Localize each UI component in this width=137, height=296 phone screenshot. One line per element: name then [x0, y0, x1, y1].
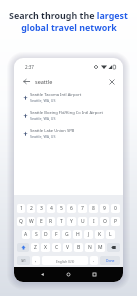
button[interactable]: H	[73, 230, 82, 239]
button[interactable]: W	[27, 217, 35, 226]
button[interactable]: K	[95, 230, 104, 239]
button[interactable]: !#1	[17, 256, 30, 265]
staticText: ,	[35, 257, 37, 264]
staticText: D	[44, 231, 48, 238]
button[interactable]: Back	[22, 77, 31, 86]
staticText: Z	[34, 244, 37, 251]
button[interactable]: C	[52, 243, 61, 252]
button[interactable]	[17, 243, 29, 252]
staticText: Q	[19, 218, 23, 225]
staticText: P	[114, 218, 118, 225]
staticText: Seattle Boeing Fld/King Co Intl Airport	[30, 110, 103, 116]
staticText: Seattle, WA, US	[30, 134, 56, 139]
staticText: I	[93, 218, 95, 225]
button[interactable]: I	[89, 217, 98, 226]
staticText: V	[66, 244, 70, 251]
staticText: J	[88, 231, 90, 238]
staticText: N	[88, 244, 92, 251]
button[interactable]: D	[42, 230, 50, 239]
button[interactable]: 8	[89, 204, 98, 213]
staticText: 4	[50, 205, 53, 212]
staticText: L	[109, 231, 112, 238]
staticText: C	[55, 244, 59, 251]
staticText: 5	[60, 205, 63, 212]
button[interactable]: Clear search	[107, 77, 116, 86]
button[interactable]: Y	[67, 217, 76, 226]
button[interactable]: S	[32, 230, 40, 239]
button[interactable]: 2	[27, 204, 35, 213]
button[interactable]: Recent apps	[90, 270, 99, 279]
button[interactable]: X	[41, 243, 50, 252]
button[interactable]: .	[90, 256, 98, 265]
staticText: A	[24, 231, 28, 238]
staticText: W	[29, 218, 34, 225]
button[interactable]: A	[22, 230, 30, 239]
staticText: H	[76, 231, 80, 238]
staticText: 8	[92, 205, 95, 212]
button[interactable]: Seattle Boeing Fld/King Co Intl Airport	[14, 106, 123, 124]
button[interactable]: 9	[100, 204, 109, 213]
button[interactable]: 7	[78, 204, 87, 213]
button[interactable]: T	[57, 217, 65, 226]
staticText: Seattle, WA, US	[30, 98, 56, 103]
button[interactable]: R	[47, 217, 55, 226]
staticText: M	[98, 244, 103, 251]
button[interactable]: Home	[64, 270, 73, 279]
button[interactable]: Seattle Lake Union SPB	[14, 124, 123, 142]
button[interactable]: English (US)	[42, 256, 88, 265]
staticText: global travel network	[21, 21, 117, 33]
staticText: 2:37	[25, 64, 34, 70]
staticText: Done	[106, 258, 115, 263]
staticText: R	[49, 218, 53, 225]
button[interactable]: Back	[38, 270, 47, 279]
button[interactable]: 4	[47, 204, 55, 213]
button[interactable]: 5	[57, 204, 65, 213]
button[interactable]: 1	[17, 204, 25, 213]
staticText: S	[35, 231, 38, 238]
staticText: 7	[81, 205, 84, 212]
button[interactable]: F	[52, 230, 60, 239]
button[interactable]: 6	[67, 204, 76, 213]
button[interactable]: M	[96, 243, 105, 252]
staticText: G	[65, 231, 69, 238]
staticText: 2	[30, 205, 33, 212]
staticText: O	[103, 218, 107, 225]
staticText: 3	[40, 205, 43, 212]
button[interactable]: P	[111, 217, 120, 226]
staticText: X	[44, 244, 47, 251]
button[interactable]: N	[85, 243, 94, 252]
staticText: 0	[114, 205, 117, 212]
staticText: Seattle, WA, US	[30, 116, 56, 121]
button[interactable]: 0	[111, 204, 120, 213]
button[interactable]: Q	[17, 217, 25, 226]
button[interactable]	[107, 243, 120, 252]
staticText: Search through the largest	[9, 9, 128, 21]
button[interactable]: Done	[100, 256, 120, 265]
staticText: Seattle Tacoma Intl Airport	[30, 92, 82, 98]
staticText: 1	[20, 205, 23, 212]
staticText: 9	[103, 205, 106, 212]
staticText: F	[55, 231, 58, 238]
button[interactable]: Z	[31, 243, 39, 252]
button[interactable]: V	[63, 243, 72, 252]
button[interactable]: O	[100, 217, 109, 226]
button[interactable]: Seattle Tacoma Intl Airport	[14, 88, 123, 106]
staticText: B	[77, 244, 81, 251]
staticText: 6	[70, 205, 73, 212]
staticText: T	[60, 218, 63, 225]
staticText: K	[98, 231, 102, 238]
button[interactable]: J	[84, 230, 93, 239]
button[interactable]: 3	[37, 204, 45, 213]
staticText: Seattle Lake Union SPB	[30, 128, 75, 134]
button[interactable]: E	[37, 217, 45, 226]
staticText: English (US)	[56, 259, 75, 263]
staticText: Y	[70, 218, 73, 225]
staticText: U	[81, 218, 85, 225]
button[interactable]: L	[106, 230, 115, 239]
button[interactable]: B	[74, 243, 83, 252]
button[interactable]: ,	[32, 256, 40, 265]
button[interactable]: G	[62, 230, 71, 239]
button[interactable]: U	[78, 217, 87, 226]
staticText: E	[40, 218, 43, 225]
staticText: seattle	[35, 78, 53, 85]
